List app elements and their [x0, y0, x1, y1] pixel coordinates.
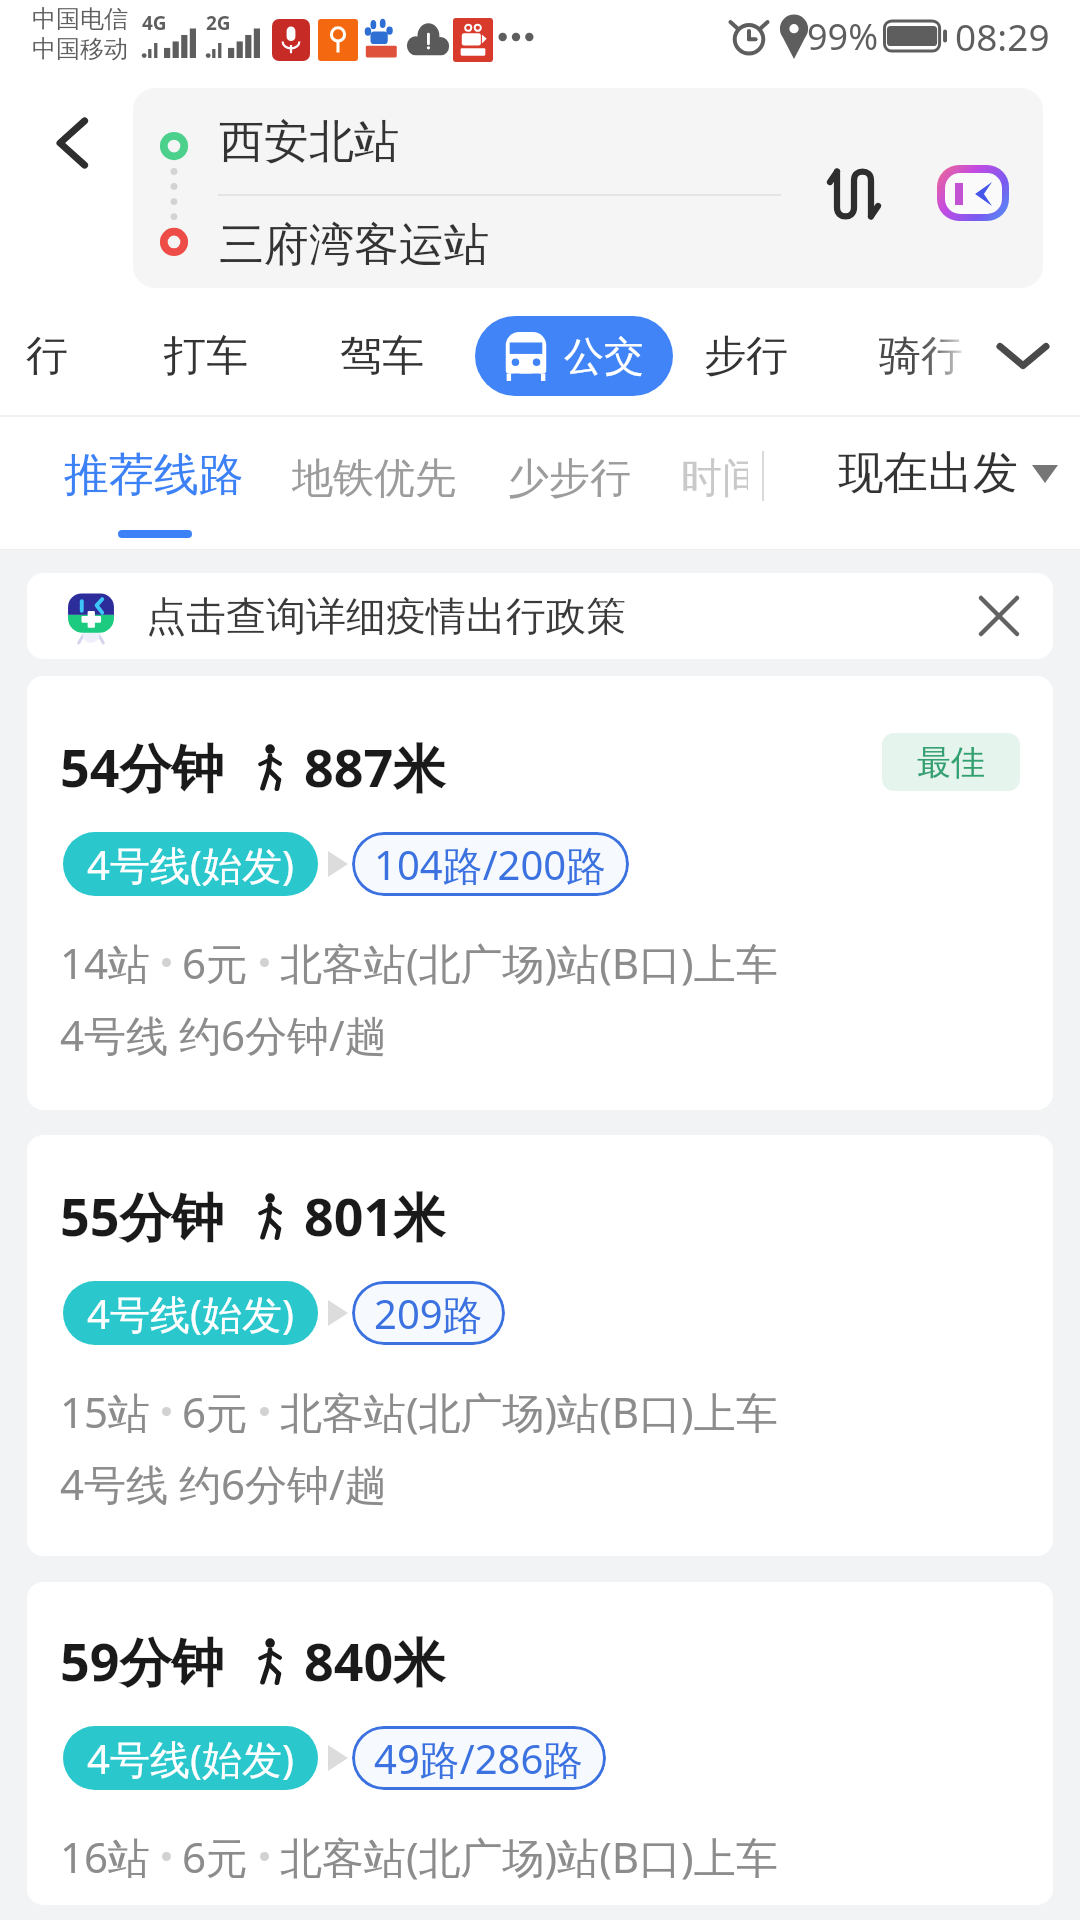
- staticText: 骑行: [879, 330, 963, 383]
- staticText: 08:29: [955, 11, 1050, 61]
- button[interactable]: AR navigation: [928, 155, 1018, 231]
- staticText: 4号线 约6分钟/趟: [60, 1455, 387, 1512]
- staticText: 驾车: [340, 330, 424, 383]
- staticText: 中国移动: [32, 34, 128, 64]
- staticText: 4G: [142, 10, 167, 36]
- staticText: 步行: [704, 330, 788, 383]
- button[interactable]: 打车: [162, 316, 250, 396]
- staticText: 三府湾客运站: [219, 217, 489, 274]
- staticText: 地铁优先: [292, 453, 456, 505]
- staticText: 公交: [564, 331, 644, 381]
- staticText: 99%: [807, 12, 879, 61]
- button[interactable]: Close banner: [956, 573, 1042, 659]
- staticText: 4号线 约6分钟/趟: [60, 1006, 387, 1063]
- button[interactable]: Back: [27, 98, 117, 188]
- button[interactable]: Swap origin and destination: [814, 154, 894, 234]
- staticText: 中国电信: [32, 4, 128, 34]
- staticText: 54分钟: [60, 731, 224, 802]
- staticText: 少步行: [508, 453, 631, 505]
- staticText: 北客站(北广场)站(B口)上车: [280, 1383, 778, 1440]
- staticText: 6元: [182, 1383, 249, 1440]
- staticText: 14站: [60, 934, 151, 991]
- staticText: 16站: [60, 1828, 151, 1885]
- button[interactable]: 驾车: [338, 316, 426, 396]
- button[interactable]: 少步行: [508, 453, 631, 505]
- staticText: 15站: [60, 1383, 151, 1440]
- staticText: 209路: [374, 1286, 483, 1341]
- staticText: 840米: [304, 1625, 446, 1696]
- staticText: 时间: [681, 453, 763, 505]
- staticText: 6元: [182, 1828, 249, 1885]
- staticText: 4号线(始发): [87, 1286, 294, 1341]
- button[interactable]: 点击查询详细疫情出行政策: [27, 573, 1053, 659]
- button[interactable]: 地铁优先: [292, 453, 456, 505]
- button[interactable]: 59分钟: [27, 1582, 1053, 1905]
- staticText: 55分钟: [60, 1180, 224, 1251]
- button[interactable]: 现在出发: [838, 445, 1058, 502]
- button[interactable]: 步行: [702, 316, 790, 396]
- button[interactable]: 时间: [681, 453, 763, 505]
- staticText: 推荐线路: [64, 447, 244, 504]
- button[interactable]: 公交: [475, 316, 673, 396]
- button[interactable]: 骑行: [877, 316, 965, 396]
- staticText: 打车: [164, 330, 248, 383]
- staticText: 6元: [182, 934, 249, 991]
- staticText: 2G: [206, 10, 231, 36]
- button[interactable]: 55分钟: [27, 1135, 1053, 1556]
- staticText: 现在出发: [838, 445, 1018, 502]
- staticText: 801米: [304, 1180, 446, 1251]
- button[interactable]: 推荐线路: [64, 447, 244, 504]
- staticText: 104路/200路: [374, 837, 607, 892]
- button[interactable]: 行: [24, 316, 70, 396]
- staticText: 4号线(始发): [87, 837, 294, 892]
- staticText: 887米: [304, 731, 446, 802]
- staticText: 行: [26, 330, 68, 383]
- staticText: 49路/286路: [374, 1731, 584, 1786]
- staticText: 59分钟: [60, 1625, 224, 1696]
- staticText: 最佳: [917, 741, 985, 784]
- staticText: 北客站(北广场)站(B口)上车: [280, 1828, 778, 1885]
- button[interactable]: 54分钟: [27, 676, 1053, 1110]
- button[interactable]: More travel modes: [985, 316, 1061, 396]
- staticText: 4号线(始发): [87, 1731, 294, 1786]
- staticText: 北客站(北广场)站(B口)上车: [280, 934, 778, 991]
- staticText: 西安北站: [219, 114, 399, 171]
- staticText: 点击查询详细疫情出行政策: [146, 591, 626, 641]
